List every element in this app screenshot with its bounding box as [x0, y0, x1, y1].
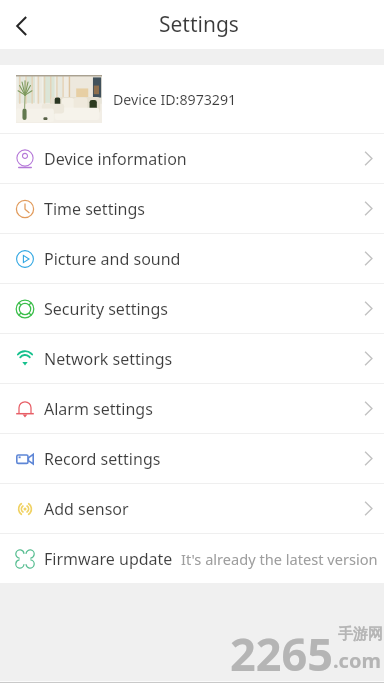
staticText: Security settings: [44, 298, 168, 320]
staticText: Picture and sound: [44, 248, 181, 270]
button[interactable]: Device ID:8973291: [0, 65, 384, 133]
staticText: Record settings: [44, 448, 161, 470]
staticText: Device ID:8973291: [113, 90, 237, 109]
staticText: It's already the latest version: [181, 549, 378, 569]
staticText: .com: [333, 647, 381, 674]
staticText: 手游网: [338, 625, 383, 644]
button[interactable]: Firmware update: [0, 534, 384, 583]
button[interactable]: Back: [0, 3, 43, 46]
button[interactable]: Network settings: [0, 334, 384, 383]
staticText: Network settings: [44, 348, 173, 370]
button[interactable]: Picture and sound: [0, 234, 384, 283]
staticText: Alarm settings: [44, 398, 153, 420]
staticText: Firmware update: [44, 548, 173, 570]
button[interactable]: Add sensor: [0, 484, 384, 533]
staticText: Add sensor: [44, 498, 129, 520]
button[interactable]: Time settings: [0, 184, 384, 233]
button[interactable]: Record settings: [0, 434, 384, 483]
staticText: Time settings: [44, 198, 145, 220]
staticText: 2265: [230, 623, 333, 683]
button[interactable]: Security settings: [0, 284, 384, 333]
button[interactable]: Device information: [0, 134, 384, 183]
button[interactable]: Alarm settings: [0, 384, 384, 433]
staticText: Settings: [159, 10, 239, 39]
staticText: Device information: [44, 148, 187, 170]
